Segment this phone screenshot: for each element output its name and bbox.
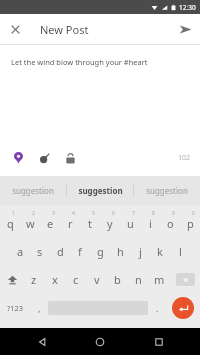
button[interactable]: s (30, 237, 50, 265)
button[interactable]: Back (25, 328, 59, 355)
staticText: Let the wind blow through your #heart (11, 57, 148, 67)
staticText: suggestion (146, 185, 188, 196)
staticText: 102 (178, 153, 191, 163)
staticText: n (135, 272, 142, 287)
button[interactable]: Self destruct timer (35, 149, 53, 167)
staticText: p (187, 216, 194, 231)
staticText: 3 (52, 210, 55, 217)
staticText: h (117, 244, 124, 259)
button[interactable]: suggestion (0, 176, 66, 205)
staticText: 12:30 (179, 3, 196, 12)
button[interactable]: t (80, 209, 100, 237)
button[interactable]: Home (83, 328, 117, 355)
button[interactable]: f (70, 237, 90, 265)
staticText: 2 (32, 210, 35, 217)
staticText: f (78, 244, 82, 259)
button[interactable]: Recent apps (142, 328, 176, 355)
button[interactable]: d (50, 237, 70, 265)
staticText: 0 (192, 210, 195, 217)
staticText: c (73, 272, 79, 287)
staticText: a (17, 244, 24, 259)
button[interactable]: z (24, 265, 44, 293)
staticText: y (107, 216, 113, 231)
button[interactable]: j (130, 237, 150, 265)
staticText: s (37, 244, 43, 259)
button[interactable]: v (86, 265, 107, 293)
button[interactable]: Enter (166, 293, 200, 323)
button[interactable]: p (180, 209, 200, 237)
button[interactable]: u (120, 209, 140, 237)
button[interactable]: suggestion (134, 176, 200, 205)
staticText: g (97, 244, 104, 259)
staticText: 6 (112, 210, 115, 217)
staticText: 8 (152, 210, 155, 217)
staticText: m (154, 272, 165, 287)
button[interactable]: g (90, 237, 110, 265)
button[interactable]: m (149, 265, 170, 293)
button[interactable]: l (170, 237, 190, 265)
button[interactable]: Shift (0, 265, 24, 293)
button[interactable]: h (110, 237, 130, 265)
button[interactable]: a (10, 237, 30, 265)
staticText: d (57, 244, 64, 259)
staticText: u (127, 216, 134, 231)
button[interactable]: n (128, 265, 149, 293)
staticText: r (68, 216, 73, 231)
button[interactable]: ?123 (0, 293, 30, 323)
staticText: k (157, 244, 163, 259)
staticText: v (94, 272, 100, 287)
staticText: q (7, 216, 14, 231)
button[interactable]: Comma (30, 293, 48, 323)
button[interactable]: suggestion (67, 176, 133, 205)
button[interactable]: b (107, 265, 128, 293)
staticText: x (52, 272, 58, 287)
button[interactable]: Backspace (170, 265, 200, 293)
staticText: . (156, 302, 159, 314)
staticText: 7 (132, 210, 135, 217)
staticText: 4 (72, 210, 75, 217)
button[interactable]: q (0, 209, 20, 237)
staticText: i (149, 216, 152, 231)
staticText: z (31, 272, 37, 287)
button[interactable]: Add location (9, 149, 27, 167)
button[interactable]: y (100, 209, 120, 237)
staticText: j (139, 244, 142, 259)
button[interactable]: k (150, 237, 170, 265)
staticText: 5 (92, 210, 95, 217)
staticText: w (26, 216, 35, 231)
staticText: , (38, 302, 41, 314)
staticText: l (179, 244, 182, 259)
button[interactable]: Send (170, 14, 200, 44)
staticText: e (47, 216, 54, 231)
staticText: suggestion (78, 185, 123, 196)
staticText: suggestion (12, 185, 54, 196)
button[interactable]: Privacy lock (61, 149, 79, 167)
button[interactable]: o (160, 209, 180, 237)
button[interactable]: e (40, 209, 60, 237)
staticText: New Post (40, 22, 89, 37)
staticText: b (114, 272, 121, 287)
button[interactable]: x (44, 265, 65, 293)
button[interactable]: w (20, 209, 40, 237)
button[interactable]: r (60, 209, 80, 237)
button[interactable]: Period (148, 293, 166, 323)
staticText: 1 (12, 210, 15, 217)
staticText: 9 (172, 210, 175, 217)
button[interactable]: Close (0, 14, 30, 44)
staticText: o (167, 216, 174, 231)
button[interactable]: i (140, 209, 160, 237)
button[interactable]: c (65, 265, 86, 293)
staticText: ?123 (7, 303, 24, 313)
staticText: t (88, 216, 92, 231)
